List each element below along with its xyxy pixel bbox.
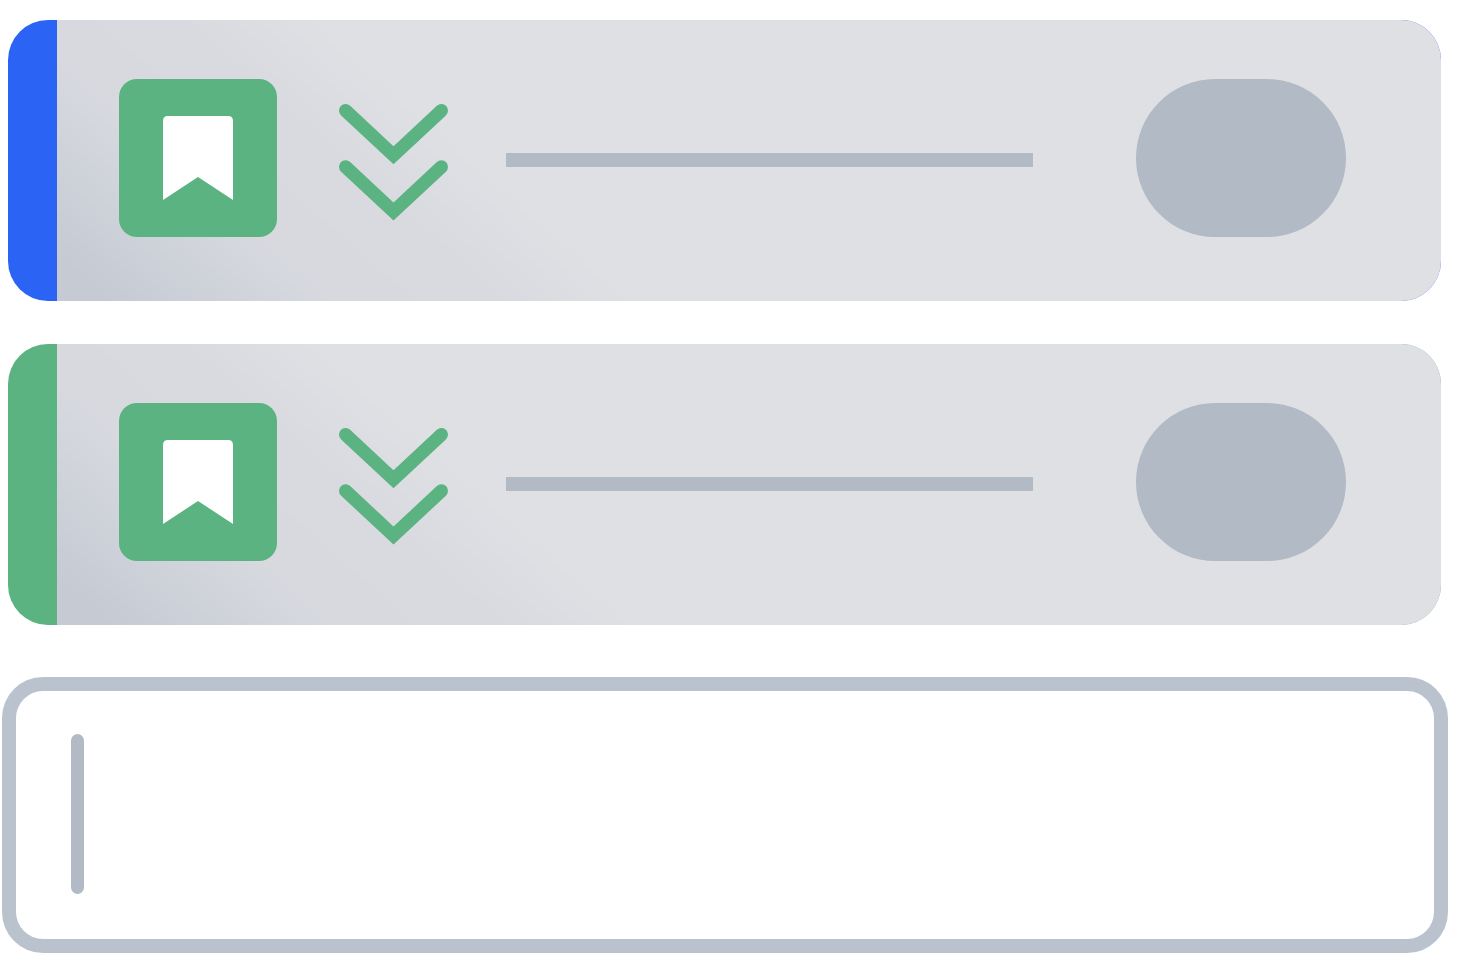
button[interactable]: Bookmark bbox=[119, 403, 277, 561]
button[interactable]: Expand bbox=[339, 428, 448, 541]
button[interactable]: Bookmarked item, blue bbox=[8, 20, 1441, 301]
button[interactable]: Text input field bbox=[16, 691, 1434, 939]
button[interactable]: Bookmarked item, green bbox=[8, 344, 1441, 625]
button[interactable]: Bookmark bbox=[119, 79, 277, 237]
button[interactable]: Expand bbox=[339, 104, 448, 217]
